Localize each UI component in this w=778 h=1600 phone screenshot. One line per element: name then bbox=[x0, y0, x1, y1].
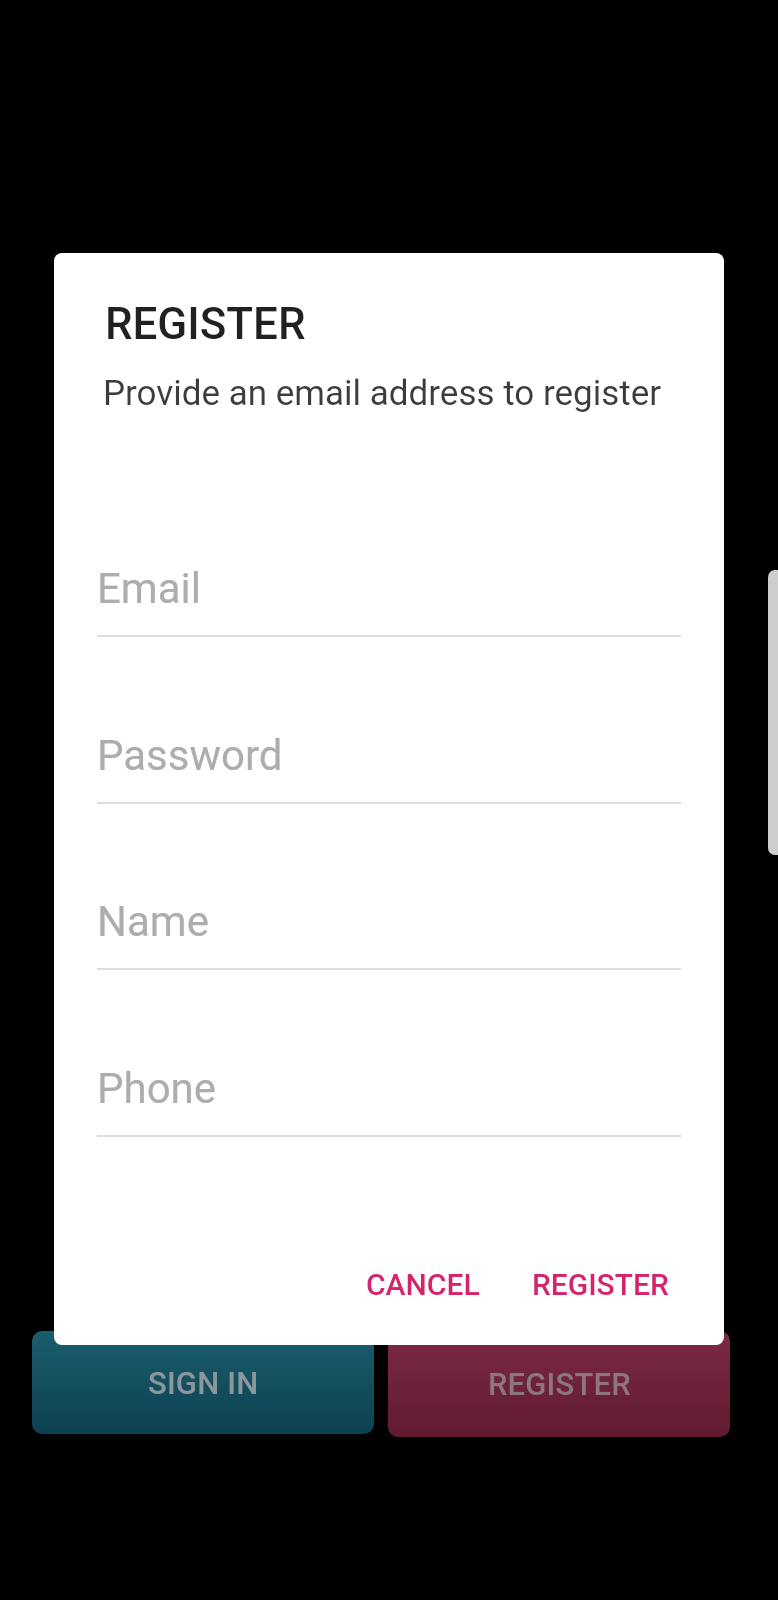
button[interactable]: Email bbox=[97, 553, 681, 637]
button[interactable]: Phone bbox=[97, 1053, 681, 1137]
staticText: REGISTER bbox=[532, 1267, 669, 1302]
staticText: SIGN IN bbox=[148, 1365, 259, 1401]
staticText: REGISTER bbox=[488, 1366, 631, 1402]
staticText: REGISTER bbox=[105, 298, 306, 350]
button[interactable]: CANCEL bbox=[336, 1251, 506, 1315]
button[interactable]: REGISTER bbox=[388, 1331, 730, 1437]
button[interactable]: Name bbox=[97, 886, 681, 970]
staticText: Provide an email address to register bbox=[103, 373, 662, 414]
button[interactable]: Password bbox=[97, 720, 681, 804]
button[interactable]: SIGN IN bbox=[32, 1331, 374, 1434]
staticText: Password bbox=[97, 731, 283, 780]
staticText: CANCEL bbox=[366, 1267, 480, 1302]
staticText: Phone bbox=[97, 1064, 217, 1113]
staticText: Name bbox=[97, 897, 209, 946]
button[interactable]: REGISTER bbox=[512, 1251, 712, 1315]
staticText: Email bbox=[97, 564, 201, 613]
